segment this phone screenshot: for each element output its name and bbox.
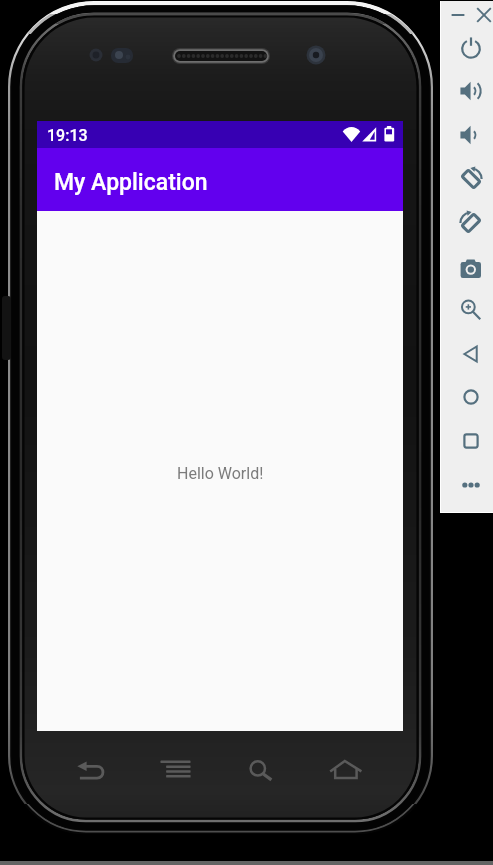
button[interactable]: Search [238, 752, 285, 788]
button[interactable]: Volume down [450, 114, 492, 156]
button[interactable]: Menu [150, 752, 202, 788]
button[interactable]: Rotate left [450, 158, 492, 200]
button[interactable]: Zoom [450, 289, 492, 331]
button[interactable]: Volume up [450, 70, 492, 112]
button[interactable]: Minimize [437, 0, 479, 36]
button[interactable]: Rotate right [450, 202, 492, 244]
button[interactable]: Power [450, 27, 492, 69]
staticText: 19:13 [47, 126, 88, 145]
staticText: My Application [54, 169, 208, 196]
button[interactable]: My Application [37, 148, 403, 211]
button[interactable]: Back [67, 752, 115, 788]
button[interactable]: Close [463, 0, 493, 36]
button[interactable]: Overview [450, 420, 492, 462]
button[interactable]: Back [450, 333, 492, 375]
staticText: Hello World! [177, 464, 264, 483]
button[interactable]: Home [450, 376, 492, 418]
button[interactable]: Home [319, 752, 373, 788]
button[interactable]: Take screenshot [450, 245, 492, 287]
button[interactable]: More options [450, 464, 492, 506]
